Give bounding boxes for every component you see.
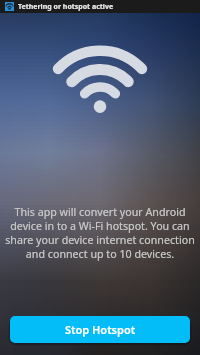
staticText: Tethering or hotspot active [18,2,114,12]
button[interactable]: Stop Hotspot [10,316,190,343]
staticText: Stop Hotspot [65,322,136,337]
staticText: This app will convert your Android devic… [4,205,196,261]
